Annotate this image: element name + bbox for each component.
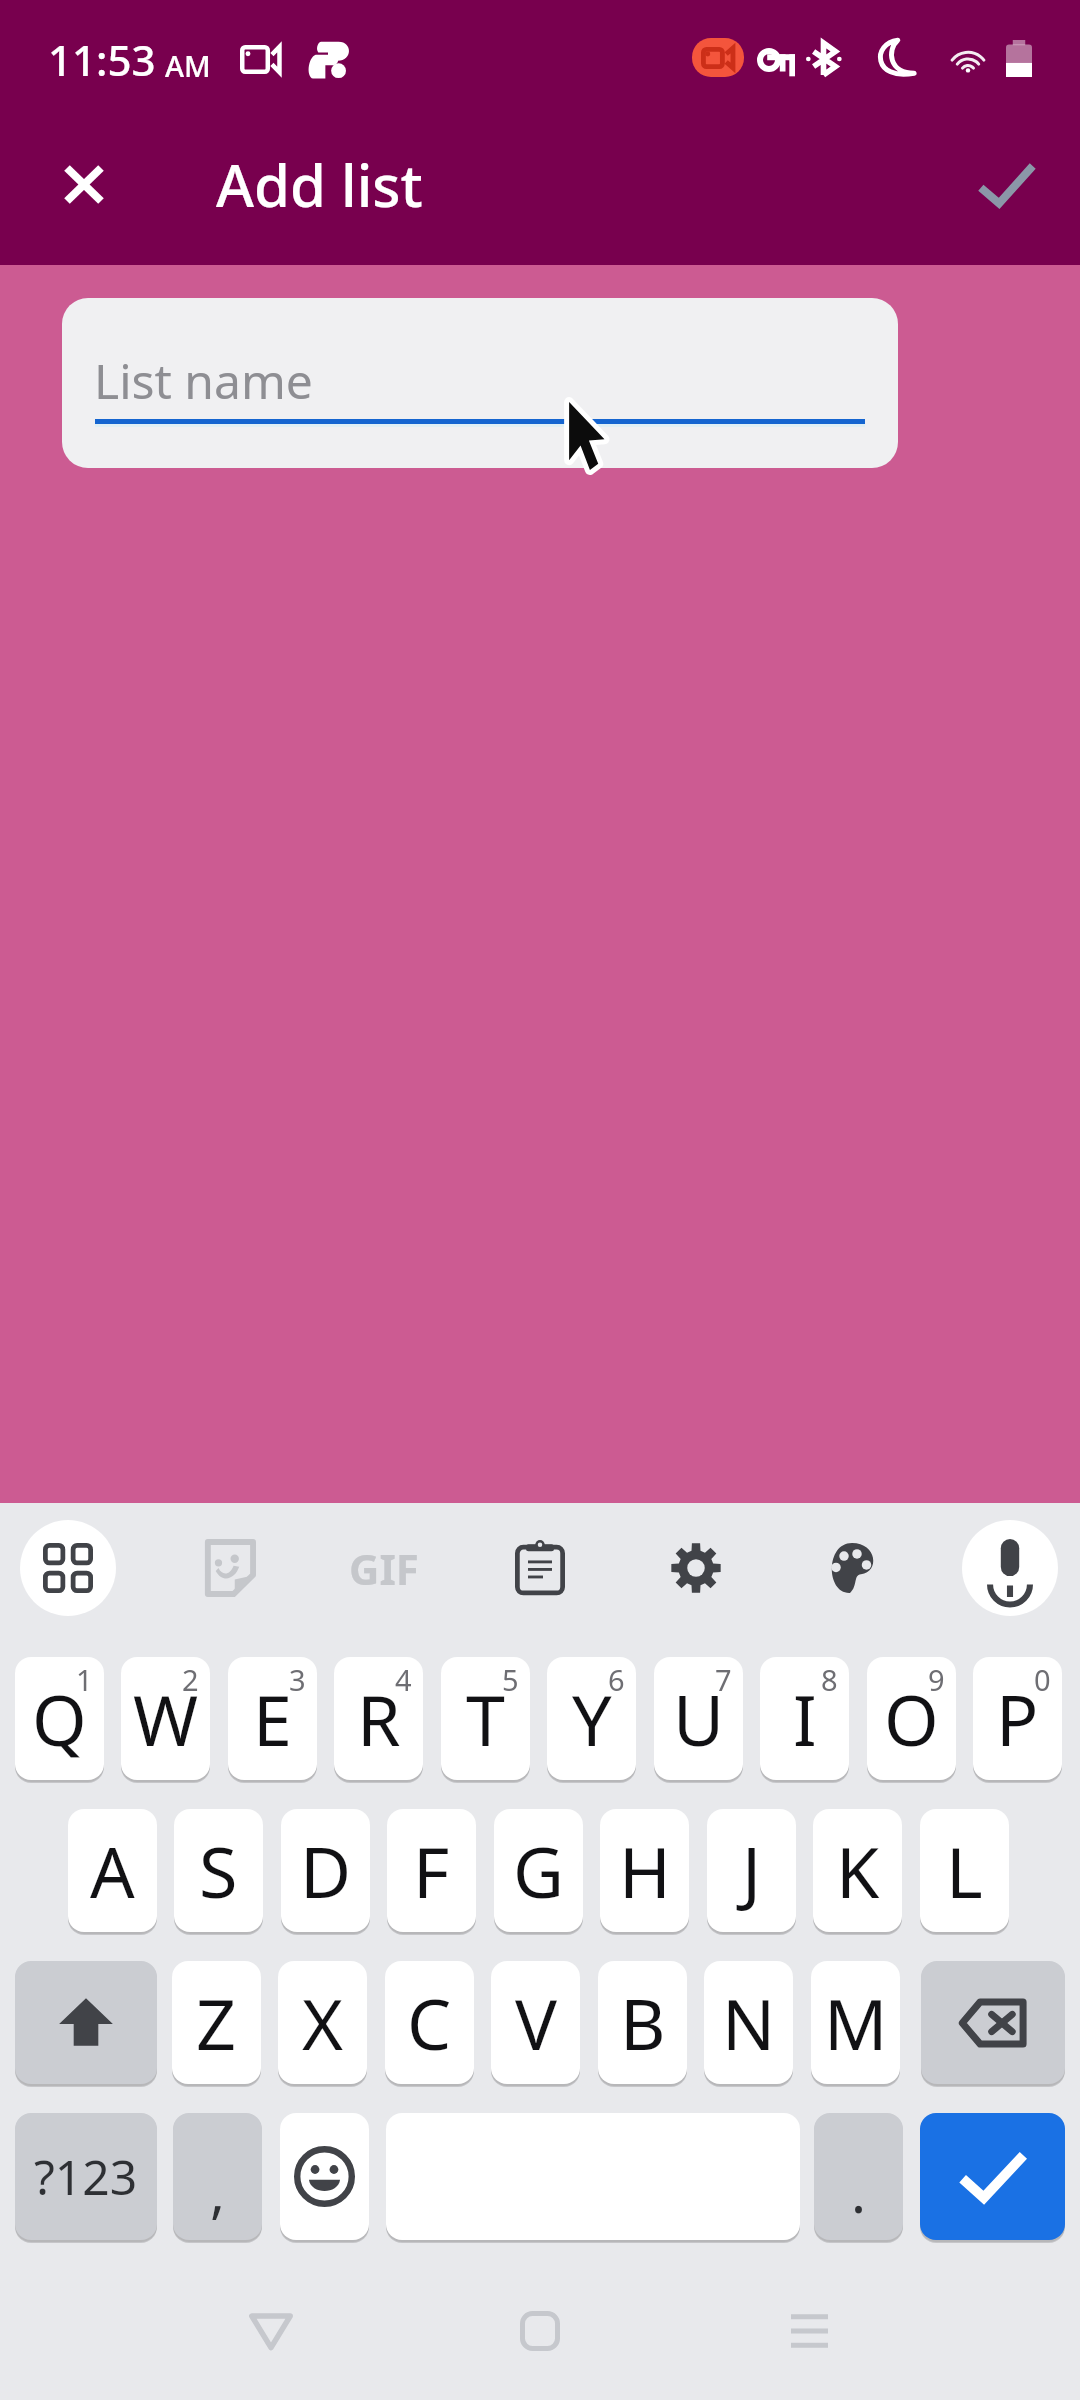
button[interactable]: Q: [15, 1657, 104, 1780]
button[interactable]: L: [920, 1809, 1009, 1932]
staticText: List name: [94, 348, 313, 413]
button[interactable]: .: [814, 2113, 903, 2240]
button[interactable]: D: [281, 1809, 370, 1932]
staticText: L: [946, 1823, 983, 1918]
button[interactable]: P: [973, 1657, 1062, 1780]
staticText: H: [619, 1823, 671, 1918]
button[interactable]: Stickers: [184, 1524, 272, 1612]
staticText: A: [90, 1823, 135, 1918]
staticText: 7: [715, 1660, 732, 1699]
button[interactable]: W: [121, 1657, 210, 1780]
button[interactable]: I: [760, 1657, 849, 1780]
button[interactable]: Z: [172, 1961, 261, 2084]
button[interactable]: Toolbox: [20, 1520, 116, 1616]
staticText: 0: [1034, 1660, 1051, 1699]
staticText: W: [133, 1671, 199, 1766]
button[interactable]: K: [813, 1809, 902, 1932]
button[interactable]: H: [600, 1809, 689, 1932]
button[interactable]: Clipboard: [496, 1524, 584, 1612]
button[interactable]: V: [491, 1961, 580, 2084]
button[interactable]: S: [174, 1809, 263, 1932]
button[interactable]: Theme: [808, 1524, 896, 1612]
button[interactable]: Shift: [15, 1961, 157, 2084]
staticText: 4: [395, 1660, 412, 1699]
staticText: V: [515, 1975, 557, 2070]
staticText: D: [300, 1823, 352, 1918]
staticText: ?123: [34, 2144, 138, 2209]
button[interactable]: ,: [173, 2113, 262, 2240]
staticText: 5: [502, 1660, 519, 1699]
staticText: O: [884, 1671, 939, 1766]
staticText: 1: [76, 1660, 93, 1699]
staticText: G: [513, 1823, 564, 1918]
button[interactable]: N: [704, 1961, 793, 2084]
button[interactable]: Y: [547, 1657, 636, 1780]
button[interactable]: Close: [36, 136, 132, 232]
button[interactable]: U: [654, 1657, 743, 1780]
button[interactable]: B: [598, 1961, 687, 2084]
staticText: GIF: [349, 1540, 419, 1597]
button[interactable]: Save: [958, 136, 1054, 232]
staticText: 8: [821, 1660, 838, 1699]
button[interactable]: Recent apps: [757, 2279, 861, 2383]
button[interactable]: C: [385, 1961, 474, 2084]
staticText: T: [466, 1671, 505, 1766]
staticText: J: [742, 1823, 762, 1918]
staticText: X: [302, 1975, 344, 2070]
button[interactable]: G: [494, 1809, 583, 1932]
staticText: R: [357, 1671, 401, 1766]
staticText: M: [824, 1975, 888, 2070]
button[interactable]: O: [867, 1657, 956, 1780]
staticText: N: [722, 1975, 776, 2070]
button[interactable]: Enter: [920, 2113, 1065, 2240]
button[interactable]: F: [387, 1809, 476, 1932]
staticText: 6: [608, 1660, 625, 1699]
button[interactable]: E: [228, 1657, 317, 1780]
button[interactable]: T: [441, 1657, 530, 1780]
button[interactable]: Settings: [652, 1524, 740, 1612]
button[interactable]: Home: [488, 2279, 592, 2383]
staticText: AM: [165, 46, 211, 85]
button[interactable]: ?123: [15, 2113, 157, 2240]
staticText: 11:53: [48, 31, 156, 88]
staticText: 3: [289, 1660, 306, 1699]
staticText: .: [851, 2153, 867, 2229]
button[interactable]: M: [811, 1961, 900, 2084]
staticText: Add list: [216, 145, 423, 224]
staticText: K: [836, 1823, 880, 1918]
staticText: Q: [32, 1671, 87, 1766]
staticText: F: [413, 1823, 450, 1918]
staticText: U: [673, 1671, 725, 1766]
button[interactable]: A: [68, 1809, 157, 1932]
button[interactable]: Emoji: [280, 2113, 369, 2240]
staticText: 2: [182, 1660, 199, 1699]
staticText: Z: [196, 1975, 237, 2070]
button[interactable]: X: [278, 1961, 367, 2084]
button[interactable]: J: [707, 1809, 796, 1932]
staticText: B: [620, 1975, 666, 2070]
button[interactable]: Back: [219, 2279, 323, 2383]
button[interactable]: R: [334, 1657, 423, 1780]
staticText: Y: [572, 1671, 612, 1766]
staticText: P: [996, 1671, 1039, 1766]
staticText: I: [793, 1671, 817, 1766]
staticText: S: [199, 1823, 238, 1918]
staticText: 9: [928, 1660, 945, 1699]
button[interactable]: Backspace: [921, 1961, 1065, 2084]
button[interactable]: List name: [62, 298, 898, 468]
staticText: C: [407, 1975, 452, 2070]
staticText: E: [253, 1671, 292, 1766]
button[interactable]: GIF: [340, 1524, 428, 1612]
staticText: ,: [210, 2153, 226, 2229]
button[interactable]: Voice input: [962, 1520, 1058, 1616]
